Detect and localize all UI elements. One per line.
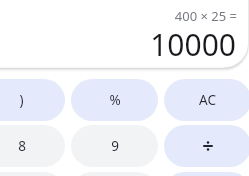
button[interactable]: 6: [71, 172, 158, 176]
button[interactable]: 9: [71, 125, 158, 167]
staticText: %: [109, 91, 121, 109]
button[interactable]: 8: [0, 125, 65, 167]
button[interactable]: Close parenthesis: [0, 79, 65, 121]
button[interactable]: Percent: [71, 79, 158, 121]
staticText: 8: [18, 137, 26, 155]
button[interactable]: AC: [164, 79, 249, 121]
button[interactable]: 5: [0, 172, 65, 176]
button[interactable]: Multiply: [164, 172, 249, 176]
staticText: 400 × 25 =: [174, 7, 237, 25]
button[interactable]: Divide: [164, 125, 249, 167]
staticText: AC: [199, 91, 216, 109]
staticText: 9: [111, 137, 119, 155]
staticText: 10000: [150, 24, 236, 65]
staticText: ): [19, 91, 24, 109]
